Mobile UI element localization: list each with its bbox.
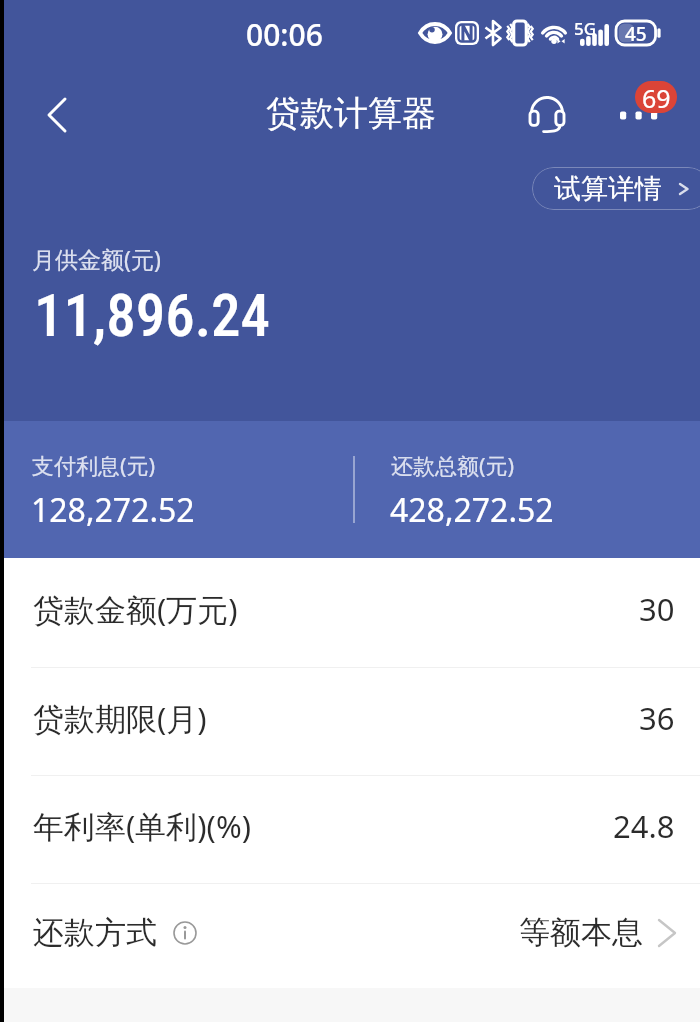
staticText: 11,896.24	[34, 281, 271, 350]
staticText: 24.8	[613, 805, 675, 847]
staticText: 贷款期限(月)	[33, 697, 207, 739]
staticText: 试算详情	[554, 172, 662, 206]
button[interactable]: 还款方式	[0, 884, 700, 989]
staticText: 428,272.52	[390, 488, 554, 532]
button[interactable]: Customer service	[520, 88, 574, 142]
staticText: 128,272.52	[31, 488, 195, 532]
staticText: 45	[625, 21, 647, 45]
staticText: 36	[639, 697, 675, 739]
staticText: 还款方式	[33, 913, 157, 952]
staticText: 5G	[574, 17, 597, 40]
button[interactable]: 年利率(单利)(%)	[0, 776, 700, 883]
staticText: 00:06	[246, 14, 323, 55]
staticText: 还款总额(元)	[391, 450, 515, 480]
staticText: 贷款计算器	[266, 92, 436, 135]
staticText: 支付利息(元)	[32, 450, 156, 480]
staticText: 30	[639, 588, 675, 630]
button[interactable]: 试算详情	[532, 167, 700, 210]
staticText: 月供金额(元)	[32, 243, 161, 274]
staticText: 贷款金额(万元)	[33, 588, 238, 630]
button[interactable]: 贷款期限(月)	[0, 668, 700, 775]
staticText: 年利率(单利)(%)	[33, 805, 251, 847]
button[interactable]: 贷款金额(万元)	[0, 558, 700, 667]
staticText: 69	[642, 81, 671, 113]
button[interactable]: Back	[30, 90, 82, 142]
staticText: 等额本息	[519, 913, 643, 952]
button[interactable]: More options	[610, 92, 666, 136]
